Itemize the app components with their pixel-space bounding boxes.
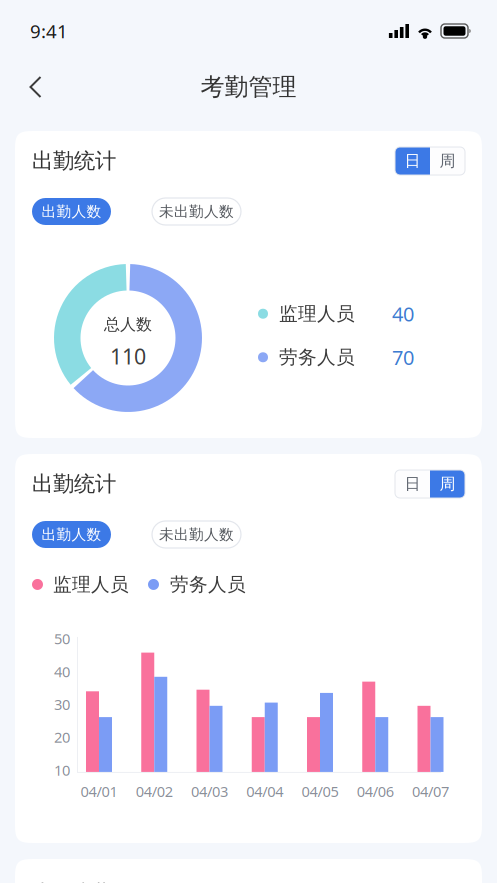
staticText: 04/06 [357,782,394,801]
staticText: 总人数 [104,314,152,334]
staticText: 04/03 [191,782,228,801]
staticText: 04/01 [80,782,117,801]
staticText: 监理人员 [279,302,355,325]
staticText: 本月考勤数据 [32,880,158,883]
staticText: 考勤管理 [200,72,296,102]
staticText: 70 [392,344,414,371]
staticText: 9:41 [30,19,68,43]
button[interactable]: 周 [430,470,465,498]
staticText: 50 [54,629,70,648]
staticText: 04/02 [136,782,173,801]
staticText: 日 [404,474,420,494]
staticText: 出勤人数 [41,525,101,543]
button[interactable]: Back [14,63,57,111]
button[interactable]: 未出勤人数 [152,521,241,548]
staticText: 周 [439,151,455,171]
button[interactable]: 未出勤人数 [152,198,241,225]
staticText: 监理人员 [53,573,129,596]
staticText: 未出勤人数 [159,202,234,220]
staticText: 30 [54,694,70,714]
staticText: 10 [54,760,70,780]
staticText: 04/04 [246,782,283,801]
staticText: 劳务人员 [279,346,355,369]
staticText: 出勤人数 [41,202,101,220]
button[interactable]: 日 [395,147,430,175]
staticText: 110 [110,342,146,370]
staticText: 周 [439,474,455,494]
staticText: 20 [54,727,70,747]
staticText: 日 [404,151,420,171]
button[interactable]: 日 [395,470,430,498]
button[interactable]: 周 [430,147,465,175]
staticText: 劳务人员 [170,573,246,596]
staticText: 04/05 [301,782,338,801]
staticText: 未出勤人数 [159,525,234,543]
staticText: 出勤统计 [32,471,116,497]
button[interactable]: 出勤人数 [32,198,111,225]
staticText: 04/07 [412,782,449,801]
staticText: 40 [392,300,414,327]
staticText: 40 [54,662,70,681]
staticText: 出勤统计 [32,148,116,174]
button[interactable]: 出勤人数 [32,521,111,548]
